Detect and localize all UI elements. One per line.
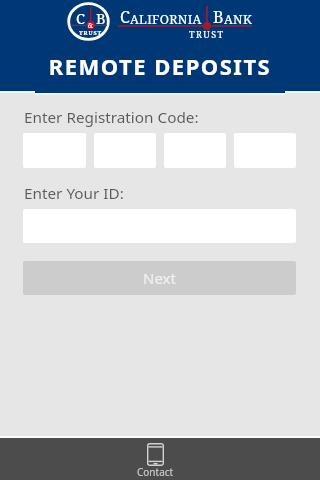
staticText: B	[96, 8, 106, 28]
staticText: C	[120, 6, 130, 28]
staticText: ALIFORNIA	[130, 11, 202, 28]
staticText: Enter Your ID:	[24, 183, 124, 204]
staticText: &	[88, 21, 93, 30]
staticText: Contact	[137, 465, 174, 479]
staticText: ANK	[224, 11, 253, 28]
staticText: Next	[143, 268, 176, 288]
button[interactable]: Contact	[119, 438, 191, 480]
staticText: B	[213, 6, 224, 28]
staticText: REMOTE DEPOSITS	[0, 51, 320, 81]
staticText: Enter Registration Code:	[24, 107, 199, 128]
staticText: TRUST	[79, 29, 103, 37]
button[interactable]: Next	[23, 261, 296, 295]
staticText: C	[76, 8, 85, 28]
staticText: TRUST	[189, 28, 225, 40]
